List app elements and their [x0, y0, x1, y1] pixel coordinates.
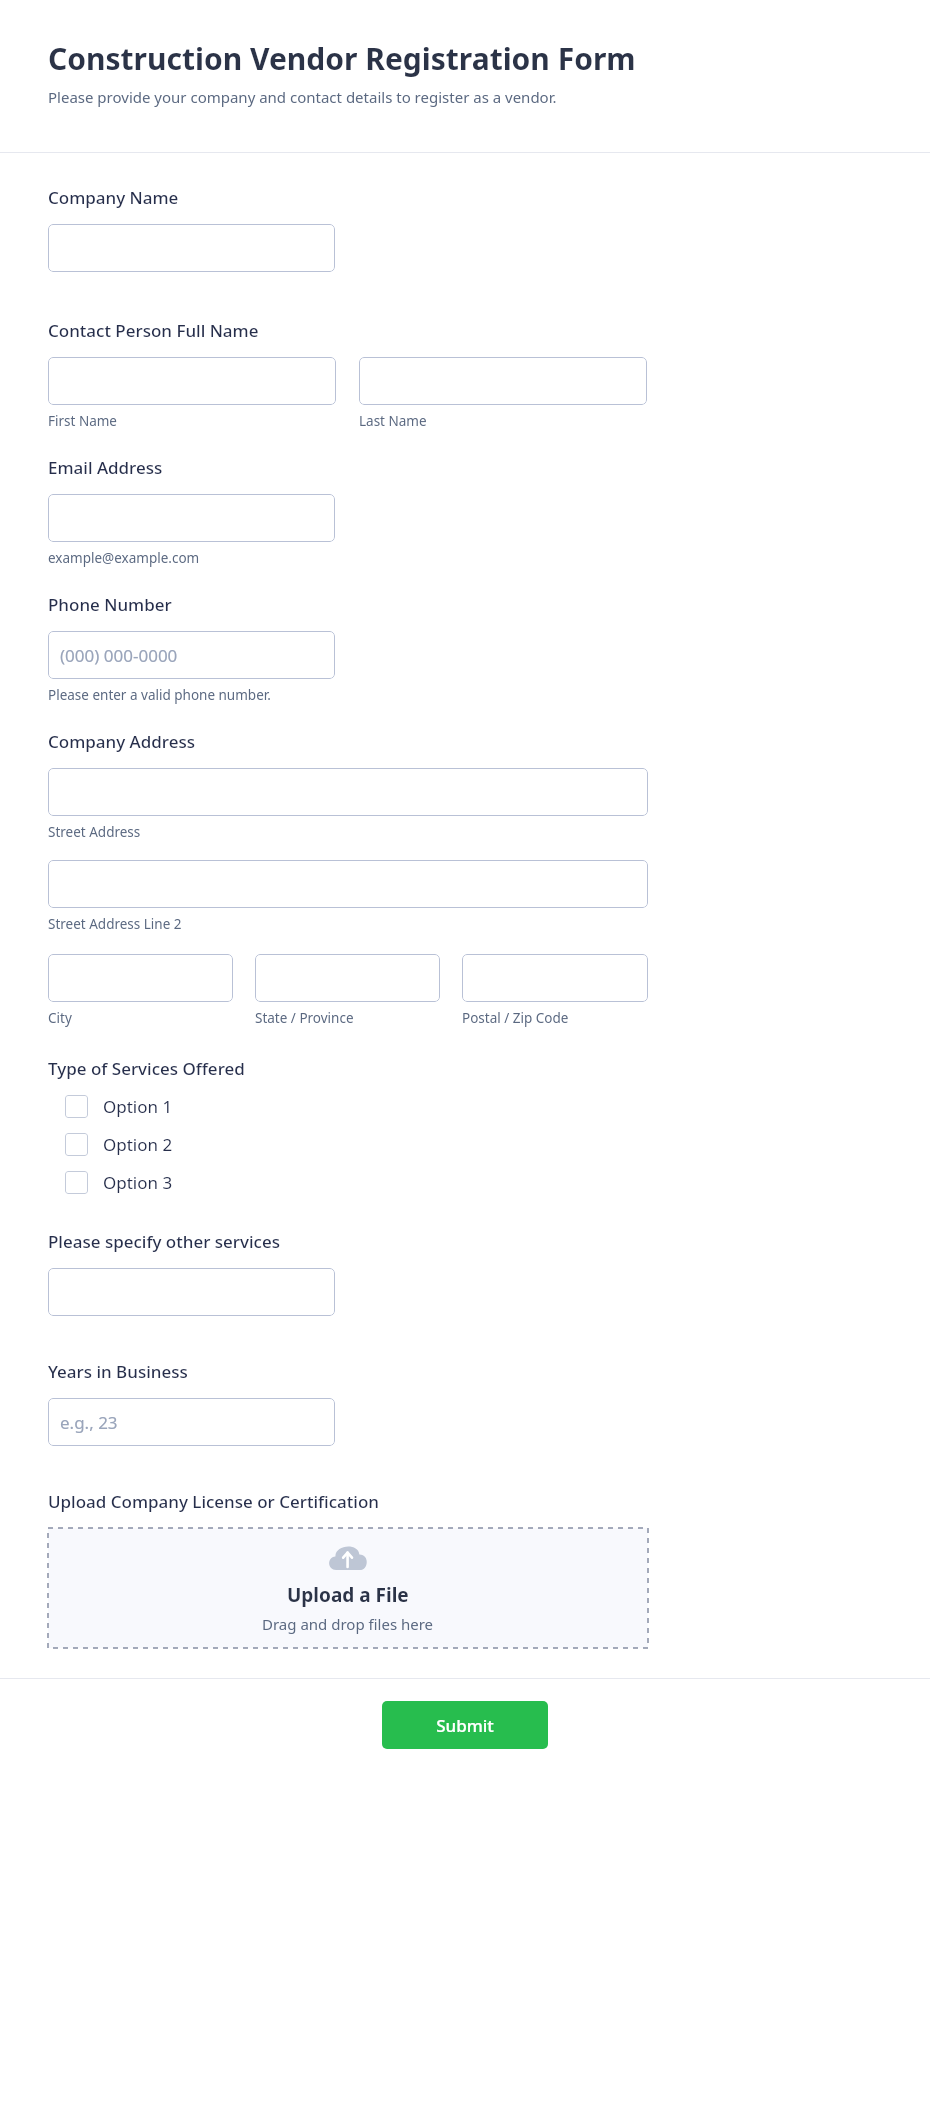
button[interactable]: (000) 000-0000: [48, 631, 335, 679]
staticText: Please specify other services: [48, 1230, 280, 1253]
button[interactable]: Submit: [382, 1701, 548, 1749]
button[interactable]: e.g., 23: [48, 1398, 335, 1446]
staticText: Please enter a valid phone number.: [48, 686, 271, 704]
staticText: Option 2: [103, 1133, 173, 1156]
button[interactable]: [48, 494, 335, 542]
staticText: Upload a File: [287, 1582, 409, 1608]
staticText: Option 1: [103, 1095, 173, 1118]
staticText: example@example.com: [48, 549, 200, 567]
button[interactable]: Option 3: [48, 1163, 348, 1201]
staticText: State / Province: [255, 1009, 354, 1027]
button[interactable]: [48, 860, 648, 908]
button[interactable]: Option 2: [48, 1125, 348, 1163]
staticText: Phone Number: [48, 593, 172, 616]
button[interactable]: Option 1: [48, 1087, 348, 1125]
button[interactable]: Upload a File: [48, 1528, 648, 1648]
staticText: Type of Services Offered: [48, 1057, 245, 1080]
staticText: Contact Person Full Name: [48, 319, 259, 342]
button[interactable]: [462, 954, 648, 1002]
button[interactable]: [359, 357, 647, 405]
staticText: Postal / Zip Code: [462, 1009, 569, 1027]
staticText: Company Address: [48, 730, 195, 753]
button[interactable]: [48, 224, 335, 272]
staticText: Last Name: [359, 412, 427, 430]
button[interactable]: [255, 954, 440, 1002]
staticText: (000) 000-0000: [60, 644, 178, 667]
staticText: City: [48, 1009, 72, 1027]
staticText: Construction Vendor Registration Form: [48, 38, 636, 79]
button[interactable]: [48, 1268, 335, 1316]
button[interactable]: [48, 954, 233, 1002]
staticText: Upload Company License or Certification: [48, 1490, 379, 1513]
button[interactable]: [48, 357, 336, 405]
staticText: Street Address Line 2: [48, 915, 182, 933]
staticText: e.g., 23: [60, 1411, 118, 1434]
staticText: First Name: [48, 412, 117, 430]
staticText: Company Name: [48, 186, 179, 209]
staticText: Years in Business: [48, 1360, 188, 1383]
staticText: Email Address: [48, 456, 163, 479]
staticText: Street Address: [48, 823, 141, 841]
staticText: Option 3: [103, 1171, 173, 1194]
staticText: Submit: [436, 1714, 494, 1737]
staticText: Drag and drop files here: [262, 1614, 434, 1634]
staticText: Please provide your company and contact …: [48, 87, 557, 107]
button[interactable]: [48, 768, 648, 816]
